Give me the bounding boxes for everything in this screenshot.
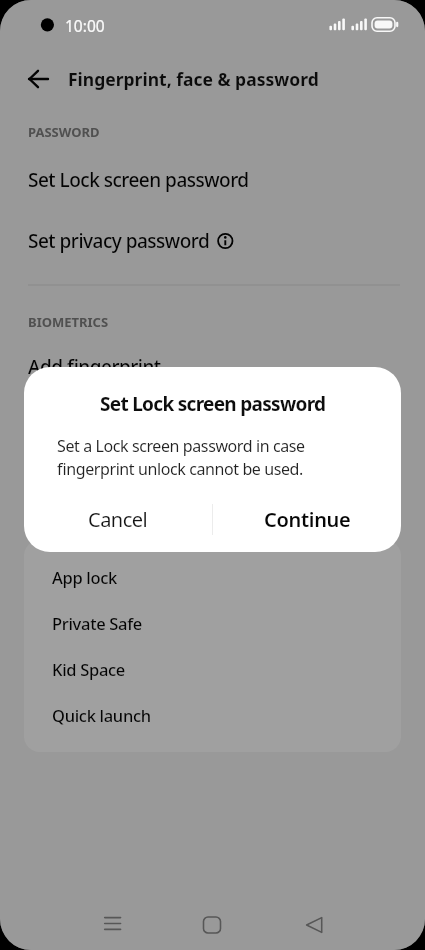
button[interactable] [192,905,232,945]
button[interactable]: Add fingerprint [0,347,425,387]
button[interactable]: Private Safe [0,603,425,643]
staticText: Set a Lock screen password in case finge… [57,435,305,480]
staticText: App lock [52,566,118,588]
staticText: Continue [264,506,351,533]
staticText: Set Lock screen password [28,167,249,193]
staticText: Fingerprint, face & password [68,67,319,91]
staticText: 10:00 [65,15,105,36]
button[interactable]: Continue [213,491,401,548]
staticText: BIOMETRICS [28,313,109,331]
button[interactable]: Cancel [24,491,212,548]
button[interactable]: Set privacy password [0,221,425,261]
staticText: Set Lock screen password [100,391,326,417]
staticText: Kid Space [52,658,126,680]
button[interactable]: Quick launch [0,695,425,735]
button[interactable]: Kid Space [0,649,425,689]
staticText: Private Safe [52,612,142,634]
staticText: PASSWORD [28,123,100,141]
button[interactable]: Set Lock screen password [0,160,425,200]
button[interactable] [92,905,132,945]
staticText: Add fingerprint [28,354,161,380]
staticText: Quick launch [52,704,151,726]
button[interactable]: App lock [0,557,425,597]
button[interactable] [294,905,334,945]
staticText: Cancel [88,506,148,533]
staticText: Set privacy password [28,228,210,254]
